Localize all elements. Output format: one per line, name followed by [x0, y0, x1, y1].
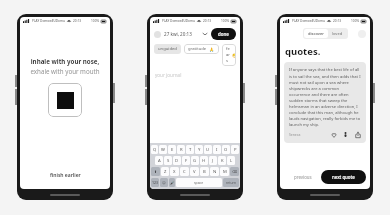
staticText: Z: [164, 169, 167, 175]
staticText: D: [175, 158, 179, 164]
staticText: K: [221, 158, 224, 164]
staticText: Q: [153, 147, 157, 153]
staticText: X: [173, 169, 176, 175]
staticText: M: [223, 169, 227, 175]
staticText: E: [171, 147, 174, 153]
staticText: 100%: [351, 19, 360, 23]
button[interactable]: Expand: [202, 31, 208, 37]
button[interactable]: 123: [151, 178, 159, 187]
staticText: O: [224, 147, 228, 153]
button[interactable]: loved: [328, 29, 347, 38]
button[interactable]: E: [168, 145, 176, 154]
button[interactable]: P: [231, 145, 239, 154]
staticText: 🎤: [170, 181, 175, 185]
button[interactable]: X: [170, 167, 179, 176]
staticText: finish earlier: [50, 172, 81, 179]
staticText: return: [226, 180, 237, 185]
staticText: ☺: [162, 181, 166, 185]
button[interactable]: If anyone says that the best life of all…: [284, 62, 366, 143]
button[interactable]: done: [211, 28, 236, 40]
button[interactable]: S: [164, 156, 172, 165]
button[interactable]: Z: [161, 167, 169, 176]
button[interactable]: F: [182, 156, 190, 165]
button[interactable]: 🎤: [169, 178, 175, 187]
staticText: B: [203, 169, 206, 175]
staticText: 20:13: [73, 19, 82, 23]
button[interactable]: Q: [151, 145, 158, 154]
staticText: loved: [332, 31, 343, 36]
staticText: S: [167, 158, 170, 164]
staticText: 20:13: [203, 19, 212, 23]
staticText: Seneca: [289, 132, 301, 137]
staticText: space: [194, 180, 204, 185]
staticText: R: [180, 147, 183, 153]
button[interactable]: M: [220, 167, 229, 176]
staticText: ⌫: [232, 170, 238, 174]
button[interactable]: W: [159, 145, 167, 154]
button[interactable]: G: [191, 156, 199, 165]
button[interactable]: Like: [330, 131, 337, 138]
button[interactable]: previous: [284, 170, 321, 184]
button[interactable]: O: [222, 145, 230, 154]
staticText: discover: [308, 31, 324, 36]
staticText: J: [212, 158, 214, 164]
button[interactable]: C: [180, 167, 189, 176]
staticText: V: [193, 169, 196, 175]
staticText: quotes.: [285, 45, 321, 58]
button[interactable]: K: [218, 156, 226, 165]
staticText: 100%: [91, 19, 100, 23]
staticText: If anyone says that the best life of all…: [289, 67, 361, 127]
staticText: Y: [198, 147, 201, 153]
button[interactable]: H: [200, 156, 208, 165]
button[interactable]: I: [213, 145, 221, 154]
button[interactable]: Profile: [358, 30, 366, 38]
staticText: gratitude: [188, 46, 207, 52]
staticText: unguided: [158, 46, 177, 52]
button[interactable]: R: [177, 145, 185, 154]
button[interactable]: gratitude: [184, 44, 219, 54]
staticText: 20:13: [333, 19, 342, 23]
staticText: W: [161, 147, 165, 153]
staticText: exhale with your mouth: [20, 67, 110, 75]
staticText: F: [185, 158, 188, 164]
staticText: done: [218, 31, 229, 37]
staticText: inhale with your nose,: [20, 57, 110, 65]
button[interactable]: Author: [342, 131, 349, 138]
button[interactable]: ⌫: [230, 167, 239, 176]
button[interactable]: A: [155, 156, 163, 165]
staticText: previous: [294, 174, 312, 180]
staticText: 27 kwi, 20:13: [164, 31, 192, 37]
button[interactable]: ☺: [160, 178, 168, 187]
button[interactable]: unguided: [154, 44, 181, 54]
button[interactable]: discover: [304, 29, 328, 38]
button[interactable]: N: [210, 167, 219, 176]
staticText: N: [213, 169, 217, 175]
staticText: U: [206, 147, 210, 153]
button[interactable]: D: [173, 156, 181, 165]
button[interactable]: finish earlier: [20, 168, 110, 183]
staticText: I: [216, 147, 218, 153]
staticText: next quote: [332, 174, 355, 180]
button[interactable]: fears: [222, 44, 236, 66]
button[interactable]: V: [190, 167, 199, 176]
staticText: PLAY DomowEUDomu: [32, 19, 65, 23]
button[interactable]: U: [204, 145, 212, 154]
button[interactable]: T: [186, 145, 194, 154]
button[interactable]: Share: [354, 131, 361, 138]
button[interactable]: L: [227, 156, 235, 165]
button[interactable]: return: [223, 178, 239, 187]
button[interactable]: next quote: [321, 170, 366, 184]
staticText: PLAY DomowEUDomu: [292, 19, 325, 23]
staticText: 123: [152, 180, 159, 185]
staticText: A: [158, 158, 161, 164]
staticText: T: [189, 147, 192, 153]
staticText: ⬆: [154, 170, 158, 174]
button[interactable]: space: [176, 178, 222, 187]
button[interactable]: ⬆: [151, 167, 160, 176]
staticText: 🙏: [209, 47, 215, 52]
button[interactable]: J: [209, 156, 217, 165]
staticText: P: [234, 147, 237, 153]
staticText: C: [183, 169, 186, 175]
button[interactable]: B: [200, 167, 209, 176]
button[interactable]: Y: [195, 145, 203, 154]
